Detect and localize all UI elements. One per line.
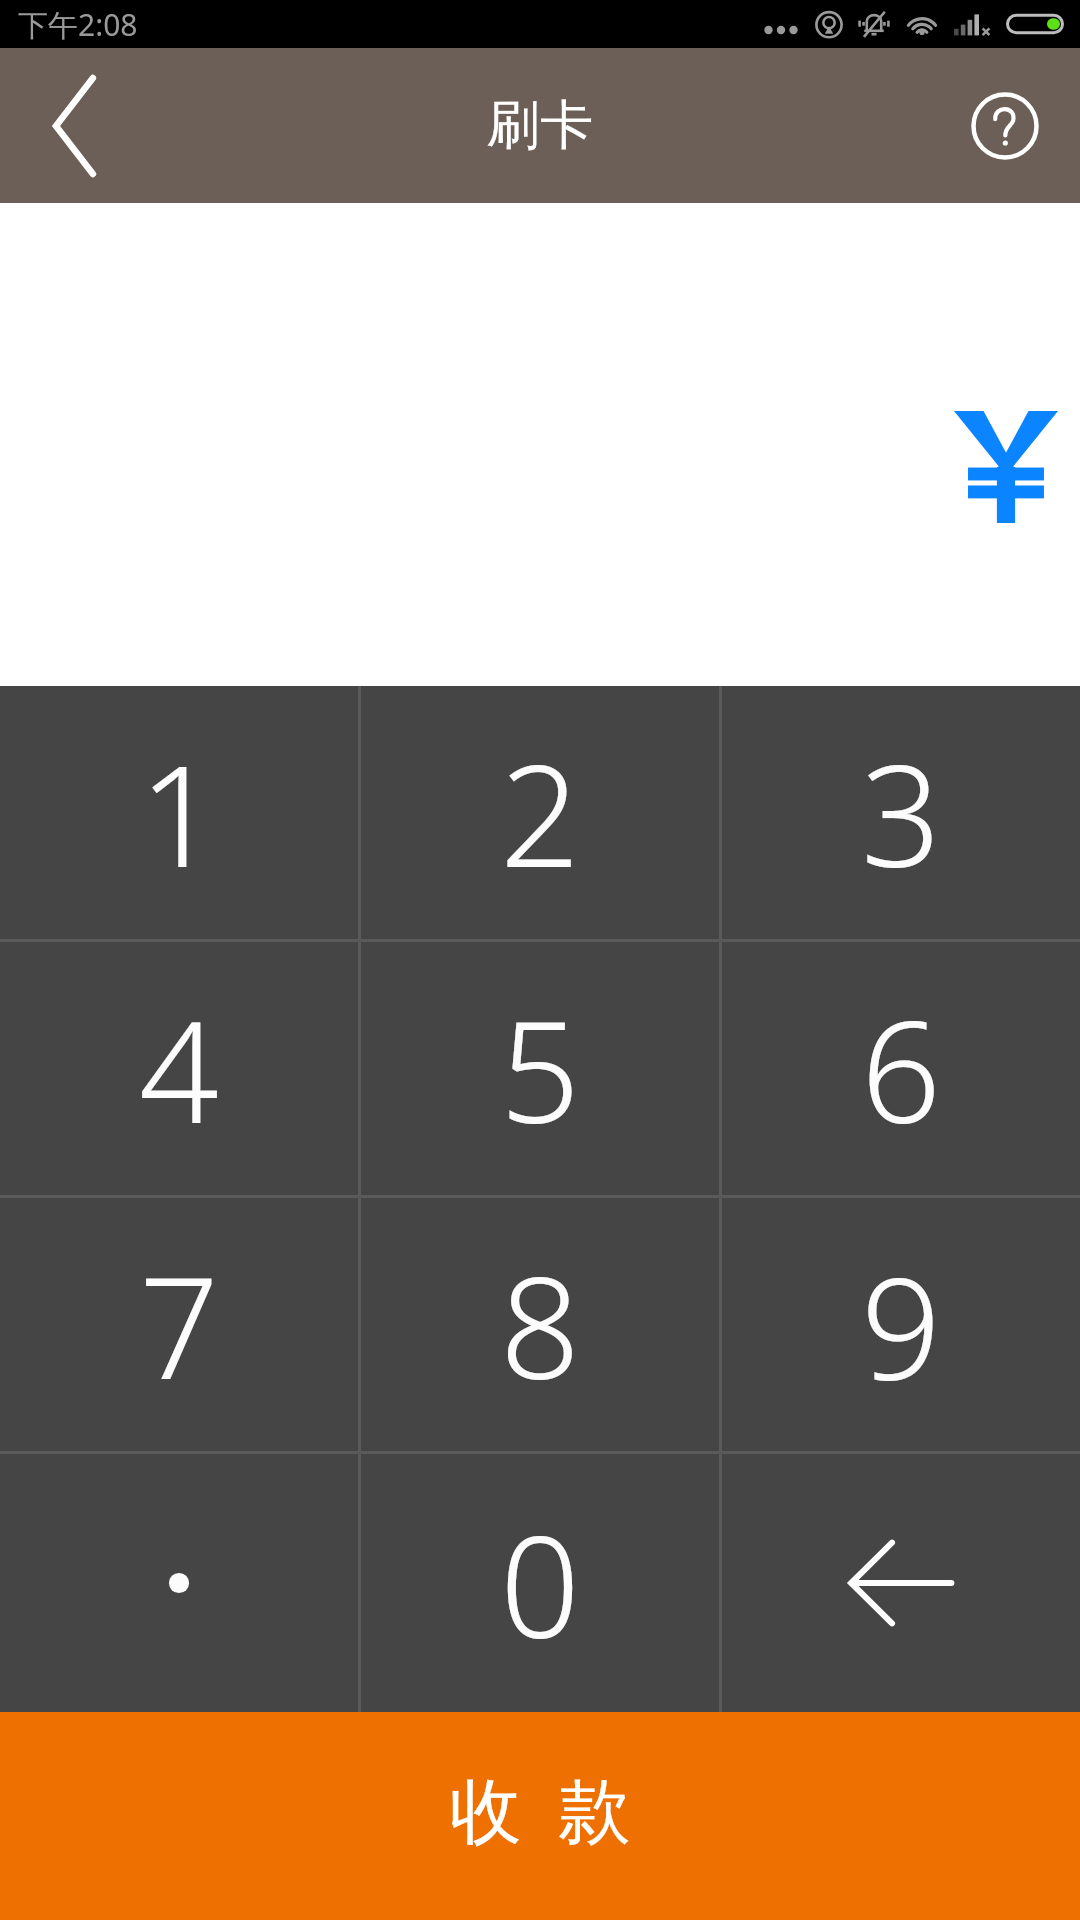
staticText: 3 [861,717,941,908]
staticText: 刷卡 [487,92,593,159]
button[interactable]: 6 [722,942,1080,1195]
staticText: 6 [861,973,941,1164]
staticText: 收 款 [449,1759,631,1857]
button[interactable]: 4 [0,942,358,1195]
staticText: 2 [500,717,580,908]
staticText: 4 [139,973,219,1164]
button[interactable]: Help [930,48,1080,203]
button[interactable]: 8 [361,1198,719,1451]
button[interactable]: 1 [0,686,358,939]
button[interactable]: 9 [722,1198,1080,1451]
button[interactable]: 0 [361,1454,719,1712]
staticText: 1 [139,717,219,908]
staticText: 0 [500,1488,580,1679]
button[interactable]: Back [0,48,150,203]
staticText: 9 [861,1229,941,1420]
button[interactable]: 5 [361,942,719,1195]
button[interactable] [0,1454,358,1712]
staticText: 5 [500,973,580,1164]
button[interactable]: 2 [361,686,719,939]
staticText: 7 [139,1229,219,1420]
staticText: 下午2:08 [18,4,138,45]
button[interactable]: 3 [722,686,1080,939]
button[interactable]: Backspace [722,1454,1080,1712]
button[interactable]: 收 款 [0,1712,1080,1920]
staticText: 8 [500,1229,580,1420]
button[interactable]: 7 [0,1198,358,1451]
